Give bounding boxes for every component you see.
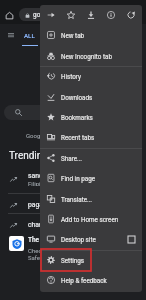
button[interactable]: Translate... xyxy=(40,189,142,209)
staticText: Bookmarks xyxy=(61,114,93,121)
staticText: New Incognito tab xyxy=(61,53,112,60)
staticText: Find in page xyxy=(61,175,96,182)
staticText: Safety xyxy=(28,254,45,261)
button[interactable]: Page info xyxy=(101,5,121,25)
button[interactable]: Home xyxy=(2,8,16,22)
staticText: Checking xyxy=(28,247,53,254)
button[interactable]: Bookmark xyxy=(61,5,81,25)
button[interactable]: Settings xyxy=(40,250,142,270)
staticText: Translate... xyxy=(61,196,93,203)
staticText: Trending searches xyxy=(9,150,91,162)
staticText: History xyxy=(61,73,82,80)
button[interactable]: Menu xyxy=(5,29,17,41)
staticText: Add to Home screen xyxy=(61,216,119,223)
button[interactable]: ALL xyxy=(20,28,39,46)
button[interactable] xyxy=(4,105,108,120)
staticText: The Web xyxy=(28,236,54,244)
staticText: Recent tabs xyxy=(61,134,95,141)
button[interactable]: Recent tabs xyxy=(40,127,142,147)
staticText: Share... xyxy=(61,155,83,162)
button[interactable]: pagasa xyxy=(10,198,140,212)
button[interactable]: New Incognito tab xyxy=(40,46,142,66)
staticText: Google xyxy=(26,132,45,139)
button[interactable]: google.com xyxy=(19,8,131,21)
staticText: Help & feedback xyxy=(61,277,107,284)
staticText: champions league xyxy=(28,221,84,229)
button[interactable]: Downloads xyxy=(40,87,142,107)
button[interactable]: History xyxy=(40,66,142,86)
staticText: ALL xyxy=(24,32,35,39)
staticText: Filipino xyxy=(28,180,48,186)
button[interactable]: Share... xyxy=(40,148,142,168)
button[interactable]: Download xyxy=(81,5,101,25)
button[interactable]: Bookmarks xyxy=(40,107,142,127)
staticText: Settings xyxy=(61,257,84,264)
staticText: New tab xyxy=(61,32,85,39)
button[interactable]: Desktop site xyxy=(40,229,142,249)
staticText: pagasa xyxy=(28,201,51,209)
button[interactable]: Find in page xyxy=(40,168,142,188)
button[interactable]: New tab xyxy=(40,25,142,45)
button[interactable]: Help & feedback xyxy=(40,270,142,290)
button[interactable]: sandra oh xyxy=(10,172,140,186)
button[interactable]: Reload xyxy=(121,5,141,25)
button[interactable]: Add to Home screen xyxy=(40,209,142,229)
button[interactable]: Forward xyxy=(41,5,61,25)
staticText: Desktop site xyxy=(61,236,96,243)
staticText: sandra oh xyxy=(28,172,58,180)
staticText: Downloads xyxy=(61,94,93,101)
button[interactable]: champions league xyxy=(10,218,140,232)
staticText: google.com xyxy=(33,11,68,19)
